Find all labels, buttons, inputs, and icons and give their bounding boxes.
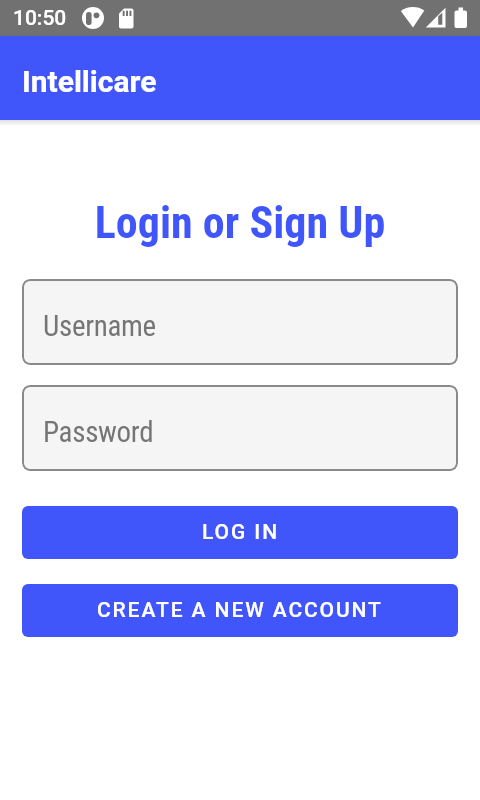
button[interactable]: LOG IN [22, 506, 458, 559]
staticText: Username [43, 309, 156, 343]
staticText: CREATE A NEW ACCOUNT [97, 598, 383, 623]
button[interactable]: CREATE A NEW ACCOUNT [22, 584, 458, 637]
staticText: Login or Sign Up [0, 197, 480, 249]
button[interactable]: Password [22, 385, 458, 471]
staticText: LOG IN [202, 520, 279, 545]
button[interactable]: Username [22, 279, 458, 365]
staticText: Intellicare [22, 64, 157, 99]
staticText: 10:50 [13, 6, 67, 31]
staticText: Password [43, 415, 154, 449]
